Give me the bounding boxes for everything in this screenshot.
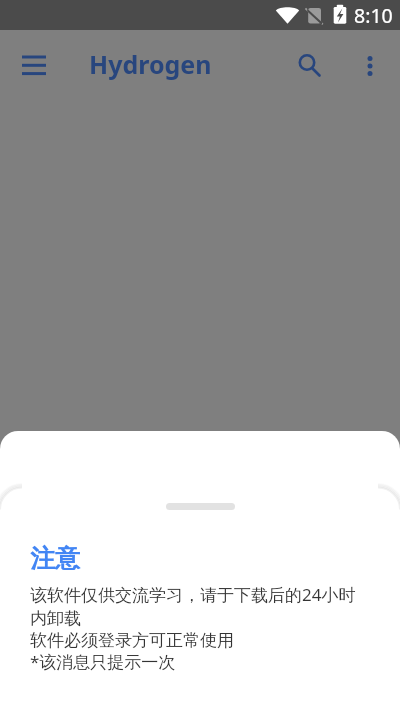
button[interactable]: Dismiss — [0, 98, 400, 462]
staticText: 该软件仅供交流学习，请于下载后的24小时内卸载 软件必须登录方可正常使用 *该消… — [30, 583, 365, 673]
staticText: 8:10 — [354, 2, 393, 29]
staticText: 注意 — [30, 543, 80, 574]
button[interactable]: Drag handle — [0, 491, 400, 522]
button[interactable]: Search — [285, 39, 331, 85]
button[interactable]: More options — [348, 39, 392, 83]
button[interactable]: Open navigation drawer — [12, 44, 56, 88]
staticText: Hydrogen — [89, 47, 212, 81]
